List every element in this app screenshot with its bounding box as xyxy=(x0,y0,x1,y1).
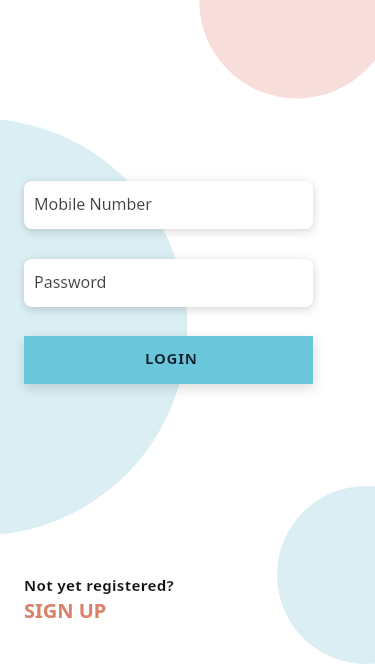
staticText: SIGN UP xyxy=(24,597,107,624)
button[interactable]: SIGN UP xyxy=(24,597,107,624)
staticText: LOGIN xyxy=(145,348,198,368)
button[interactable]: LOGIN xyxy=(24,336,313,384)
staticText: Not yet registered? xyxy=(24,575,174,595)
button[interactable]: Password xyxy=(24,259,313,307)
staticText: Password xyxy=(34,271,107,293)
staticText: Mobile Number xyxy=(34,193,152,215)
button[interactable]: Mobile Number xyxy=(24,181,313,229)
